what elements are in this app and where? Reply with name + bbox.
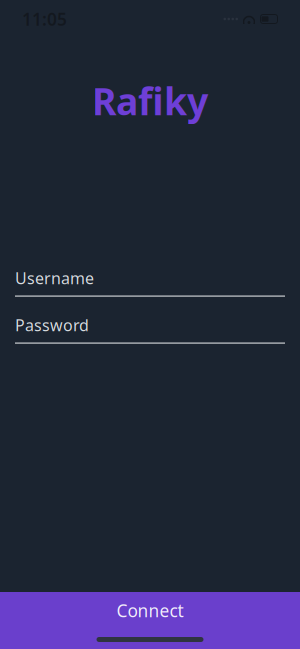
button[interactable]: Username: [15, 270, 285, 297]
staticText: Rafiky: [92, 76, 208, 126]
staticText: Username: [15, 267, 94, 289]
button[interactable]: Connect: [0, 592, 300, 649]
staticText: 11:05: [22, 7, 67, 30]
staticText: Connect: [116, 599, 183, 622]
button[interactable]: Password: [15, 317, 285, 344]
staticText: Password: [15, 314, 89, 336]
